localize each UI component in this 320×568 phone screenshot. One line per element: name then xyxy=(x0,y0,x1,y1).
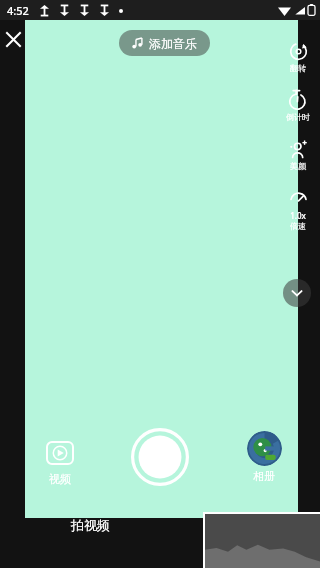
button[interactable]: 视频 xyxy=(38,441,82,486)
staticText: 美颜 xyxy=(290,161,306,171)
button[interactable]: Flip camera xyxy=(278,40,318,73)
button[interactable]: 添加音乐 xyxy=(119,30,210,56)
staticText: 拍视频 xyxy=(71,517,110,533)
button[interactable]: Countdown timer xyxy=(278,89,318,122)
staticText: 4:52 xyxy=(7,3,29,18)
staticText: 视频 xyxy=(49,472,71,486)
button[interactable]: Playback speed xyxy=(278,187,318,231)
staticText: 1.0x xyxy=(290,210,306,221)
button[interactable]: 拍视频 xyxy=(50,512,130,538)
button[interactable]: Beauty xyxy=(278,138,318,171)
button[interactable]: Record xyxy=(131,428,189,486)
staticText: 倍速 xyxy=(290,221,306,231)
button[interactable]: 相册 xyxy=(243,431,285,483)
staticText: 添加音乐 xyxy=(149,36,197,51)
staticText: 翻转 xyxy=(290,63,306,73)
staticText: 倒计时 xyxy=(286,112,310,122)
button[interactable]: Collapse tools xyxy=(283,279,311,307)
button[interactable]: Close xyxy=(0,24,26,54)
staticText: 相册 xyxy=(253,469,275,483)
